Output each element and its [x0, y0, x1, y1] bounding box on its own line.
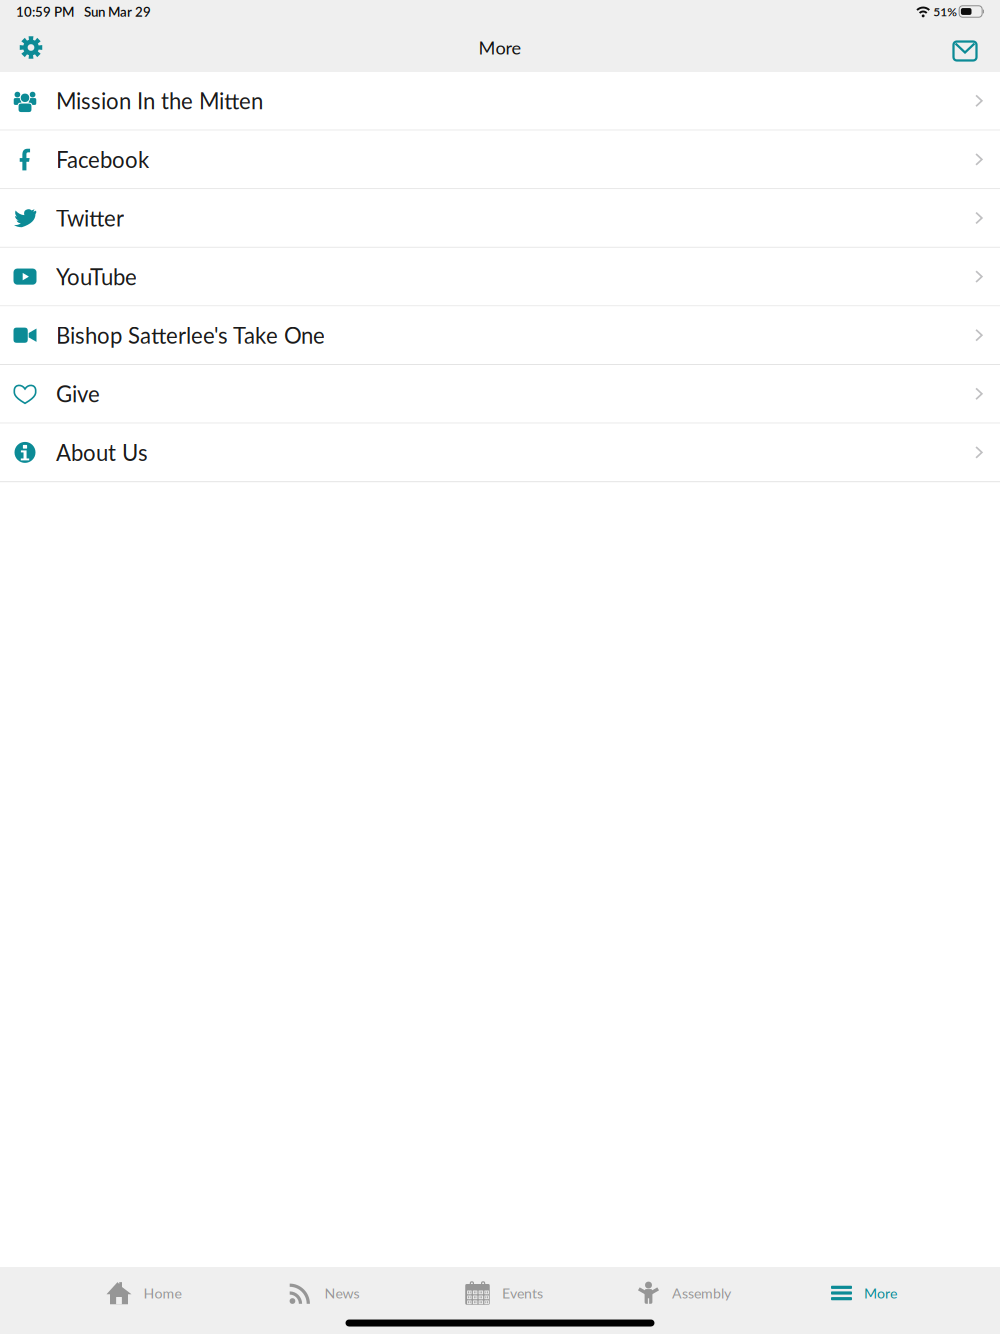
staticText: Give [56, 380, 100, 407]
staticText: 10:59 PM [16, 3, 74, 19]
staticText: Mission In the Mitten [56, 87, 263, 114]
button[interactable]: Facebook [0, 131, 1000, 189]
staticText: Events [502, 1284, 543, 1301]
button[interactable]: Settings [9, 25, 53, 69]
button[interactable]: Mail [943, 25, 987, 69]
button[interactable]: Assembly [594, 1267, 774, 1319]
staticText: More [864, 1284, 897, 1301]
staticText: Bishop Satterlee's Take One [56, 322, 325, 348]
button[interactable]: Bishop Satterlee's Take One [0, 306, 1000, 365]
staticText: Twitter [56, 205, 124, 231]
staticText: News [324, 1284, 359, 1301]
button[interactable]: Twitter [0, 189, 1000, 248]
button[interactable]: YouTube [0, 248, 1000, 306]
staticText: Sun Mar 29 [84, 3, 151, 19]
staticText: 51% [933, 4, 957, 19]
staticText: Facebook [56, 146, 149, 173]
staticText: Home [143, 1284, 181, 1301]
button[interactable]: News [234, 1267, 414, 1319]
button[interactable]: Home [54, 1267, 234, 1319]
staticText: Assembly [672, 1284, 731, 1301]
button[interactable]: More [774, 1267, 954, 1319]
button[interactable]: Mission In the Mitten [0, 72, 1000, 131]
staticText: About Us [56, 439, 148, 466]
button[interactable]: Events [414, 1267, 594, 1319]
button[interactable]: Give [0, 365, 1000, 424]
staticText: YouTube [56, 263, 137, 290]
staticText: More [478, 37, 521, 58]
button[interactable]: About Us [0, 424, 1000, 482]
